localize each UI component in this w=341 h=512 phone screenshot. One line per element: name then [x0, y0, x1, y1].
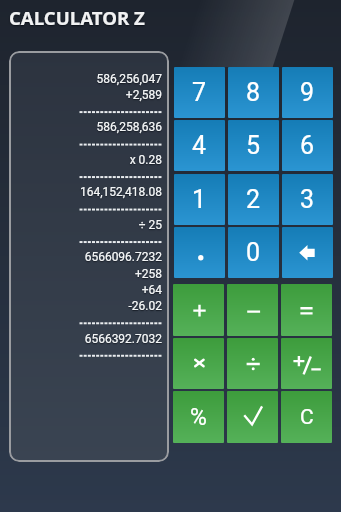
staticText: -26.02 [74, 299, 162, 315]
staticText: 6566392.7032 [74, 332, 162, 348]
button[interactable]: Divide [227, 338, 278, 389]
staticText: 9 [300, 78, 315, 107]
button[interactable]: 2 [228, 174, 279, 225]
button[interactable]: Minus [227, 284, 278, 336]
staticText: +64 [74, 283, 162, 299]
staticText: 164,152,418.08 [74, 185, 162, 201]
button[interactable]: Multiply [173, 338, 224, 389]
staticText: +2,589 [74, 88, 162, 104]
button[interactable]: Equals [281, 284, 332, 336]
button[interactable]: % [173, 391, 224, 443]
button[interactable]: 6 [282, 120, 333, 171]
staticText: +258 [74, 267, 162, 283]
staticText: 6 [300, 131, 315, 160]
staticText: 2 [246, 185, 261, 214]
staticText: 6566096.7232 [74, 250, 162, 266]
staticText: 4 [192, 131, 207, 160]
button[interactable]: 5 [228, 120, 279, 171]
staticText: 3 [300, 185, 315, 214]
staticText: 586,258,636 [74, 120, 162, 136]
staticText: 5 [246, 131, 261, 160]
staticText: 586,256,047 [74, 72, 162, 88]
button[interactable]: Plus [173, 284, 224, 336]
button[interactable]: 0 [228, 227, 279, 278]
staticText: 0 [246, 238, 261, 267]
button[interactable]: Square root [227, 391, 278, 443]
button[interactable]: 4 [174, 120, 225, 171]
button[interactable]: 8 [228, 67, 279, 118]
button[interactable]: 1 [174, 174, 225, 225]
staticText: 8 [246, 78, 261, 107]
staticText: 1 [192, 185, 207, 214]
button[interactable]: 9 [282, 67, 333, 118]
button[interactable]: Backspace [282, 227, 333, 278]
staticText: ÷ 25 [74, 218, 162, 234]
staticText: % [190, 404, 207, 431]
button[interactable]: 7 [174, 67, 225, 118]
button[interactable]: Plus minus [281, 338, 332, 389]
staticText: CALCULATOR Z [9, 5, 145, 30]
button[interactable]: 3 [282, 174, 333, 225]
staticText: C [300, 405, 314, 430]
button[interactable]: Decimal point [174, 227, 225, 278]
staticText: 7 [192, 78, 207, 107]
button[interactable]: C [281, 391, 332, 443]
staticText: x 0.28 [74, 153, 162, 169]
